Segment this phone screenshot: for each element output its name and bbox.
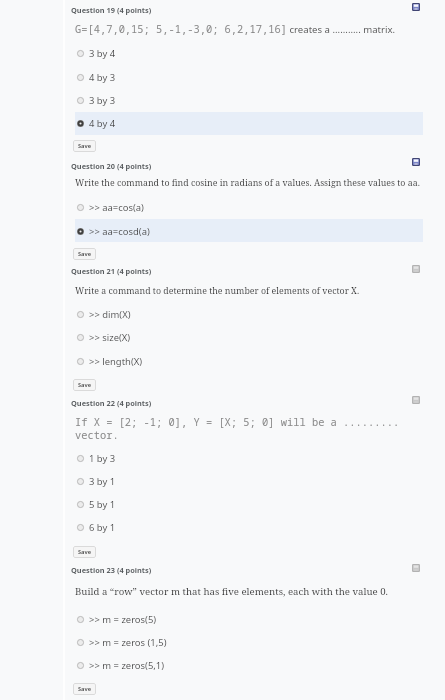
staticText: Question 20 (4 points)	[71, 161, 152, 171]
staticText: >> length(X)	[89, 355, 143, 368]
button[interactable]: >> aa=cosd(a)	[77, 220, 227, 242]
staticText: >> aa=cos(a)	[89, 201, 144, 214]
staticText: >> size(X)	[89, 331, 131, 344]
staticText: 6 by 1	[89, 521, 116, 534]
staticText: Question 22 (4 points)	[71, 398, 152, 408]
staticText: >> dim(X)	[89, 308, 131, 321]
staticText: Save	[78, 548, 91, 556]
button[interactable]: Save	[73, 546, 96, 558]
button[interactable]: 6 by 1	[77, 516, 227, 538]
staticText: 4 by 4	[89, 117, 116, 130]
staticText: 3 by 1	[89, 475, 116, 488]
button[interactable]: Save	[73, 140, 96, 152]
button[interactable]: >> size(X)	[77, 326, 227, 348]
button[interactable]: 3 by 4	[77, 42, 227, 64]
button[interactable]: 3 by 1	[77, 470, 227, 492]
staticText: 1 by 3	[89, 452, 116, 465]
staticText: >> aa=cosd(a)	[89, 225, 150, 238]
staticText: Save	[78, 381, 91, 389]
staticText: Save	[78, 142, 91, 150]
button[interactable]: 5 by 1	[77, 493, 227, 515]
staticText: If X = [2; -1; 0], Y = [X; 5; 0] will be…	[75, 415, 400, 429]
button[interactable]: >> length(X)	[77, 350, 227, 372]
button[interactable]	[75, 219, 423, 242]
staticText: 5 by 1	[89, 498, 116, 511]
button[interactable]: 3 by 3	[77, 89, 227, 111]
staticText: Save	[78, 250, 91, 258]
button[interactable]: Save	[73, 248, 96, 260]
staticText: Question 19 (4 points)	[71, 5, 152, 15]
button[interactable]: >> m = zeros(5)	[77, 608, 227, 630]
button[interactable]: 4 by 3	[77, 66, 227, 88]
staticText: Write a command to determine the number …	[75, 285, 360, 297]
button[interactable]: Save answer	[412, 564, 420, 572]
button[interactable]: 1 by 3	[77, 447, 227, 469]
button[interactable]: >> m = zeros (1,5)	[77, 631, 227, 653]
staticText: 4 by 3	[89, 71, 116, 84]
staticText: >> m = zeros(5,1)	[89, 659, 165, 672]
staticText: Save	[78, 685, 91, 693]
button[interactable]: Save answer	[412, 396, 420, 404]
staticText: 3 by 4	[89, 47, 116, 60]
button[interactable]: Save answer	[412, 3, 420, 11]
staticText: vector.	[75, 428, 119, 442]
staticText: Write the command to find cosine in radi…	[75, 177, 420, 189]
button[interactable]: Save answer	[412, 265, 420, 273]
button[interactable]: 4 by 4	[77, 112, 227, 134]
staticText: >> m = zeros(5)	[89, 613, 157, 626]
staticText: Question 23 (4 points)	[71, 565, 152, 575]
button[interactable]: Save	[73, 683, 96, 695]
button[interactable]: >> m = zeros(5,1)	[77, 654, 227, 676]
staticText: G=[4,7,0,15; 5,-1,-3,0; 6,2,17,16] creat…	[75, 22, 396, 36]
button[interactable]: Save	[73, 379, 96, 391]
button[interactable]	[75, 112, 423, 135]
staticText: Build a “row” vector m that has five ele…	[75, 585, 389, 598]
staticText: >> m = zeros (1,5)	[89, 636, 167, 649]
button[interactable]: Save answer	[412, 158, 420, 166]
button[interactable]: >> dim(X)	[77, 303, 227, 325]
button[interactable]: >> aa=cos(a)	[77, 196, 227, 218]
staticText: Question 21 (4 points)	[71, 266, 152, 276]
staticText: 3 by 3	[89, 94, 116, 107]
